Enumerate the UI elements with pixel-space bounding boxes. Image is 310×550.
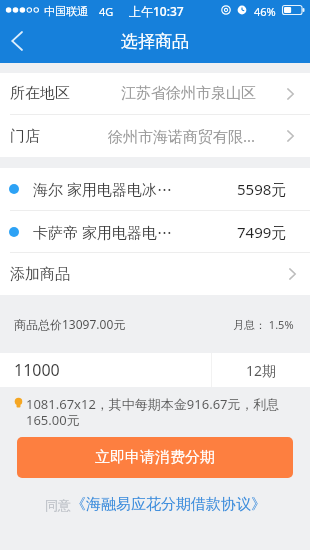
staticText: 上午10:37	[129, 3, 184, 19]
button[interactable]: 《海融易应花分期借款协议》	[71, 495, 266, 514]
staticText: 5598元	[237, 179, 287, 199]
staticText: 门店	[10, 127, 40, 146]
staticText: 徐州市海诺商贸有限...	[108, 126, 256, 146]
staticText: 卡萨帝 家用电器电冰箱洗衣机	[33, 222, 172, 242]
staticText: 4G	[99, 4, 114, 19]
staticText: 11000	[14, 359, 60, 381]
button[interactable]: 所在地区	[0, 73, 310, 114]
staticText: 江苏省徐州市泉山区	[121, 84, 256, 103]
staticText: 立即申请消费分期	[95, 448, 215, 467]
button[interactable]: 门店	[0, 115, 310, 157]
button[interactable]: 卡萨帝 家用电器电冰箱洗衣机	[0, 211, 310, 252]
staticText: 12期	[246, 361, 277, 380]
button[interactable]: 海尔 家用电器电冰箱洗衣机	[0, 168, 310, 210]
button[interactable]: 12期	[212, 353, 310, 387]
staticText: 7499元	[237, 222, 287, 242]
button[interactable]: 立即申请消费分期	[17, 437, 293, 478]
button[interactable]: Back	[0, 20, 37, 63]
staticText: 所在地区	[10, 84, 70, 103]
staticText: 中国联通	[44, 4, 88, 18]
staticText: 同意	[45, 497, 71, 513]
staticText: 添加商品	[10, 265, 70, 284]
staticText: 1081.67x12，其中每期本金916.67元，利息165.00元	[26, 395, 280, 429]
staticText: 月息： 1.5%	[233, 317, 294, 332]
button[interactable]: 添加商品	[0, 253, 310, 295]
staticText: 海尔 家用电器电冰箱洗衣机	[33, 179, 173, 199]
staticText: 《海融易应花分期借款协议》	[71, 495, 266, 514]
staticText: 选择商品	[121, 31, 189, 52]
staticText: 46%	[254, 4, 276, 19]
staticText: 商品总价13097.00元	[14, 316, 126, 332]
